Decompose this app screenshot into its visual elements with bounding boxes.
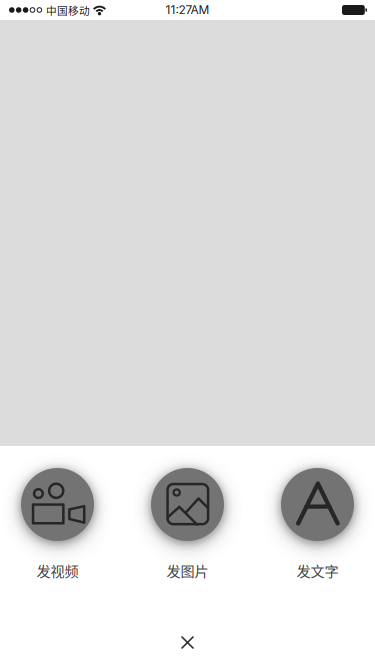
button[interactable]: Close: [168, 623, 207, 662]
staticText: 发视频: [36, 560, 78, 580]
button[interactable]: 发视频: [21, 468, 94, 580]
button[interactable]: 发图片: [151, 468, 224, 580]
staticText: 中国移动: [46, 2, 90, 18]
button[interactable]: 发文字: [281, 468, 354, 580]
staticText: 11:27AM: [165, 3, 209, 17]
staticText: 发文字: [296, 560, 338, 580]
staticText: 发图片: [166, 560, 208, 580]
